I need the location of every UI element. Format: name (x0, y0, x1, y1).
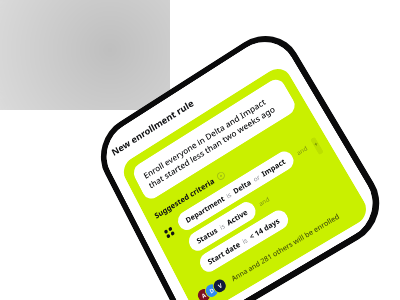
staticText: V (217, 281, 224, 290)
staticText: Suggested criteria (152, 175, 216, 221)
staticText: A (200, 291, 208, 300)
staticText: Start date (206, 239, 242, 267)
button[interactable]: Department (175, 148, 297, 233)
staticText: is (224, 190, 233, 201)
staticText: Anna and 281 others will be enrolled (229, 211, 341, 283)
staticText: Delta (231, 177, 253, 196)
staticText: Department (184, 194, 226, 225)
button[interactable]: Add criteria (310, 136, 324, 155)
staticText: or (251, 172, 262, 184)
staticText: is (241, 235, 250, 246)
staticText: is (218, 221, 227, 232)
staticText: and (295, 143, 309, 157)
staticText: < 14 days (247, 215, 282, 242)
staticText: Impact (260, 156, 287, 179)
staticText: Enroll everyone in Delta and Impact that… (141, 88, 286, 191)
staticText: New enrollment rule (109, 97, 196, 159)
button[interactable]: Enroll everyone in Delta and Impact that… (130, 76, 299, 202)
button[interactable]: Start date (197, 207, 292, 275)
staticText: D (208, 286, 216, 295)
staticText: Active (225, 207, 249, 228)
staticText: and (257, 194, 271, 208)
button[interactable]: Status (186, 198, 259, 254)
staticText: Status (195, 225, 220, 246)
